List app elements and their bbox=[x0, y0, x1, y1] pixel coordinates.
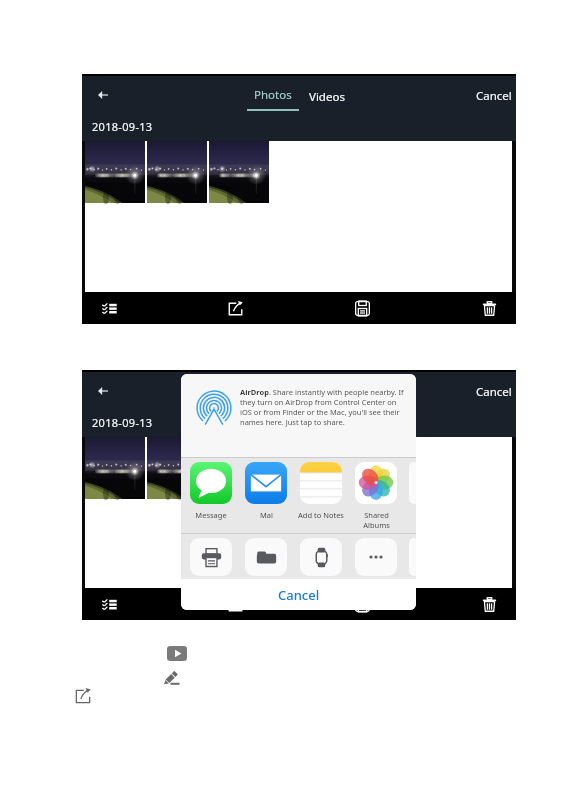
button[interactable]: More bbox=[355, 538, 397, 576]
button[interactable]: Message bbox=[184, 462, 238, 520]
button[interactable]: Photos bbox=[245, 79, 301, 121]
button[interactable]: Photo bbox=[209, 141, 269, 203]
staticText: Cancel bbox=[278, 586, 320, 604]
button[interactable]: Delete bbox=[475, 590, 503, 618]
staticText: Videos bbox=[309, 89, 345, 105]
button[interactable]: Cancel bbox=[466, 374, 512, 400]
button[interactable]: Print bbox=[190, 538, 232, 576]
button[interactable]: Select all bbox=[95, 590, 123, 618]
button[interactable]: Save bbox=[348, 294, 376, 322]
staticText: Videos bbox=[309, 385, 345, 401]
button[interactable]: Save bbox=[348, 590, 376, 618]
button[interactable]: Photo bbox=[85, 141, 145, 203]
staticText: Shared Albums bbox=[363, 510, 390, 530]
button[interactable]: Videos bbox=[299, 79, 355, 105]
button[interactable]: Mal bbox=[239, 462, 293, 520]
button[interactable]: Back bbox=[89, 81, 117, 109]
button[interactable]: Select all bbox=[95, 294, 123, 322]
button[interactable]: Back bbox=[89, 377, 117, 405]
button[interactable]: Videos bbox=[299, 375, 355, 401]
button[interactable]: Apple Watch bbox=[300, 538, 342, 576]
staticText: Cancel bbox=[476, 384, 512, 400]
button[interactable]: Photo bbox=[147, 141, 207, 203]
button[interactable]: Share bbox=[222, 294, 250, 322]
button[interactable]: Delete bbox=[475, 294, 503, 322]
button[interactable]: Cancel bbox=[181, 579, 416, 610]
staticText: Message bbox=[195, 510, 227, 520]
button[interactable]: Photos bbox=[245, 375, 301, 417]
button[interactable]: Share bbox=[222, 590, 250, 618]
staticText: Cancel bbox=[476, 88, 512, 104]
staticText: AirDrop. Share instantly with people nea… bbox=[240, 387, 405, 427]
staticText: Add to Notes bbox=[298, 510, 344, 520]
staticText: 2018-09-13 bbox=[92, 415, 153, 430]
staticText: Photos bbox=[254, 87, 292, 103]
staticText: Photos bbox=[254, 383, 292, 399]
button[interactable]: Shared Albums bbox=[349, 462, 403, 530]
staticText: Mal bbox=[260, 510, 273, 520]
button[interactable]: Cancel bbox=[466, 78, 512, 104]
button[interactable]: Save to Files bbox=[245, 538, 287, 576]
staticText: 2018-09-13 bbox=[92, 119, 153, 134]
button[interactable]: Photo bbox=[85, 437, 145, 499]
button[interactable]: Add to Notes bbox=[294, 462, 348, 520]
button[interactable]: Photo bbox=[147, 437, 207, 499]
button[interactable]: Photo bbox=[209, 437, 269, 499]
